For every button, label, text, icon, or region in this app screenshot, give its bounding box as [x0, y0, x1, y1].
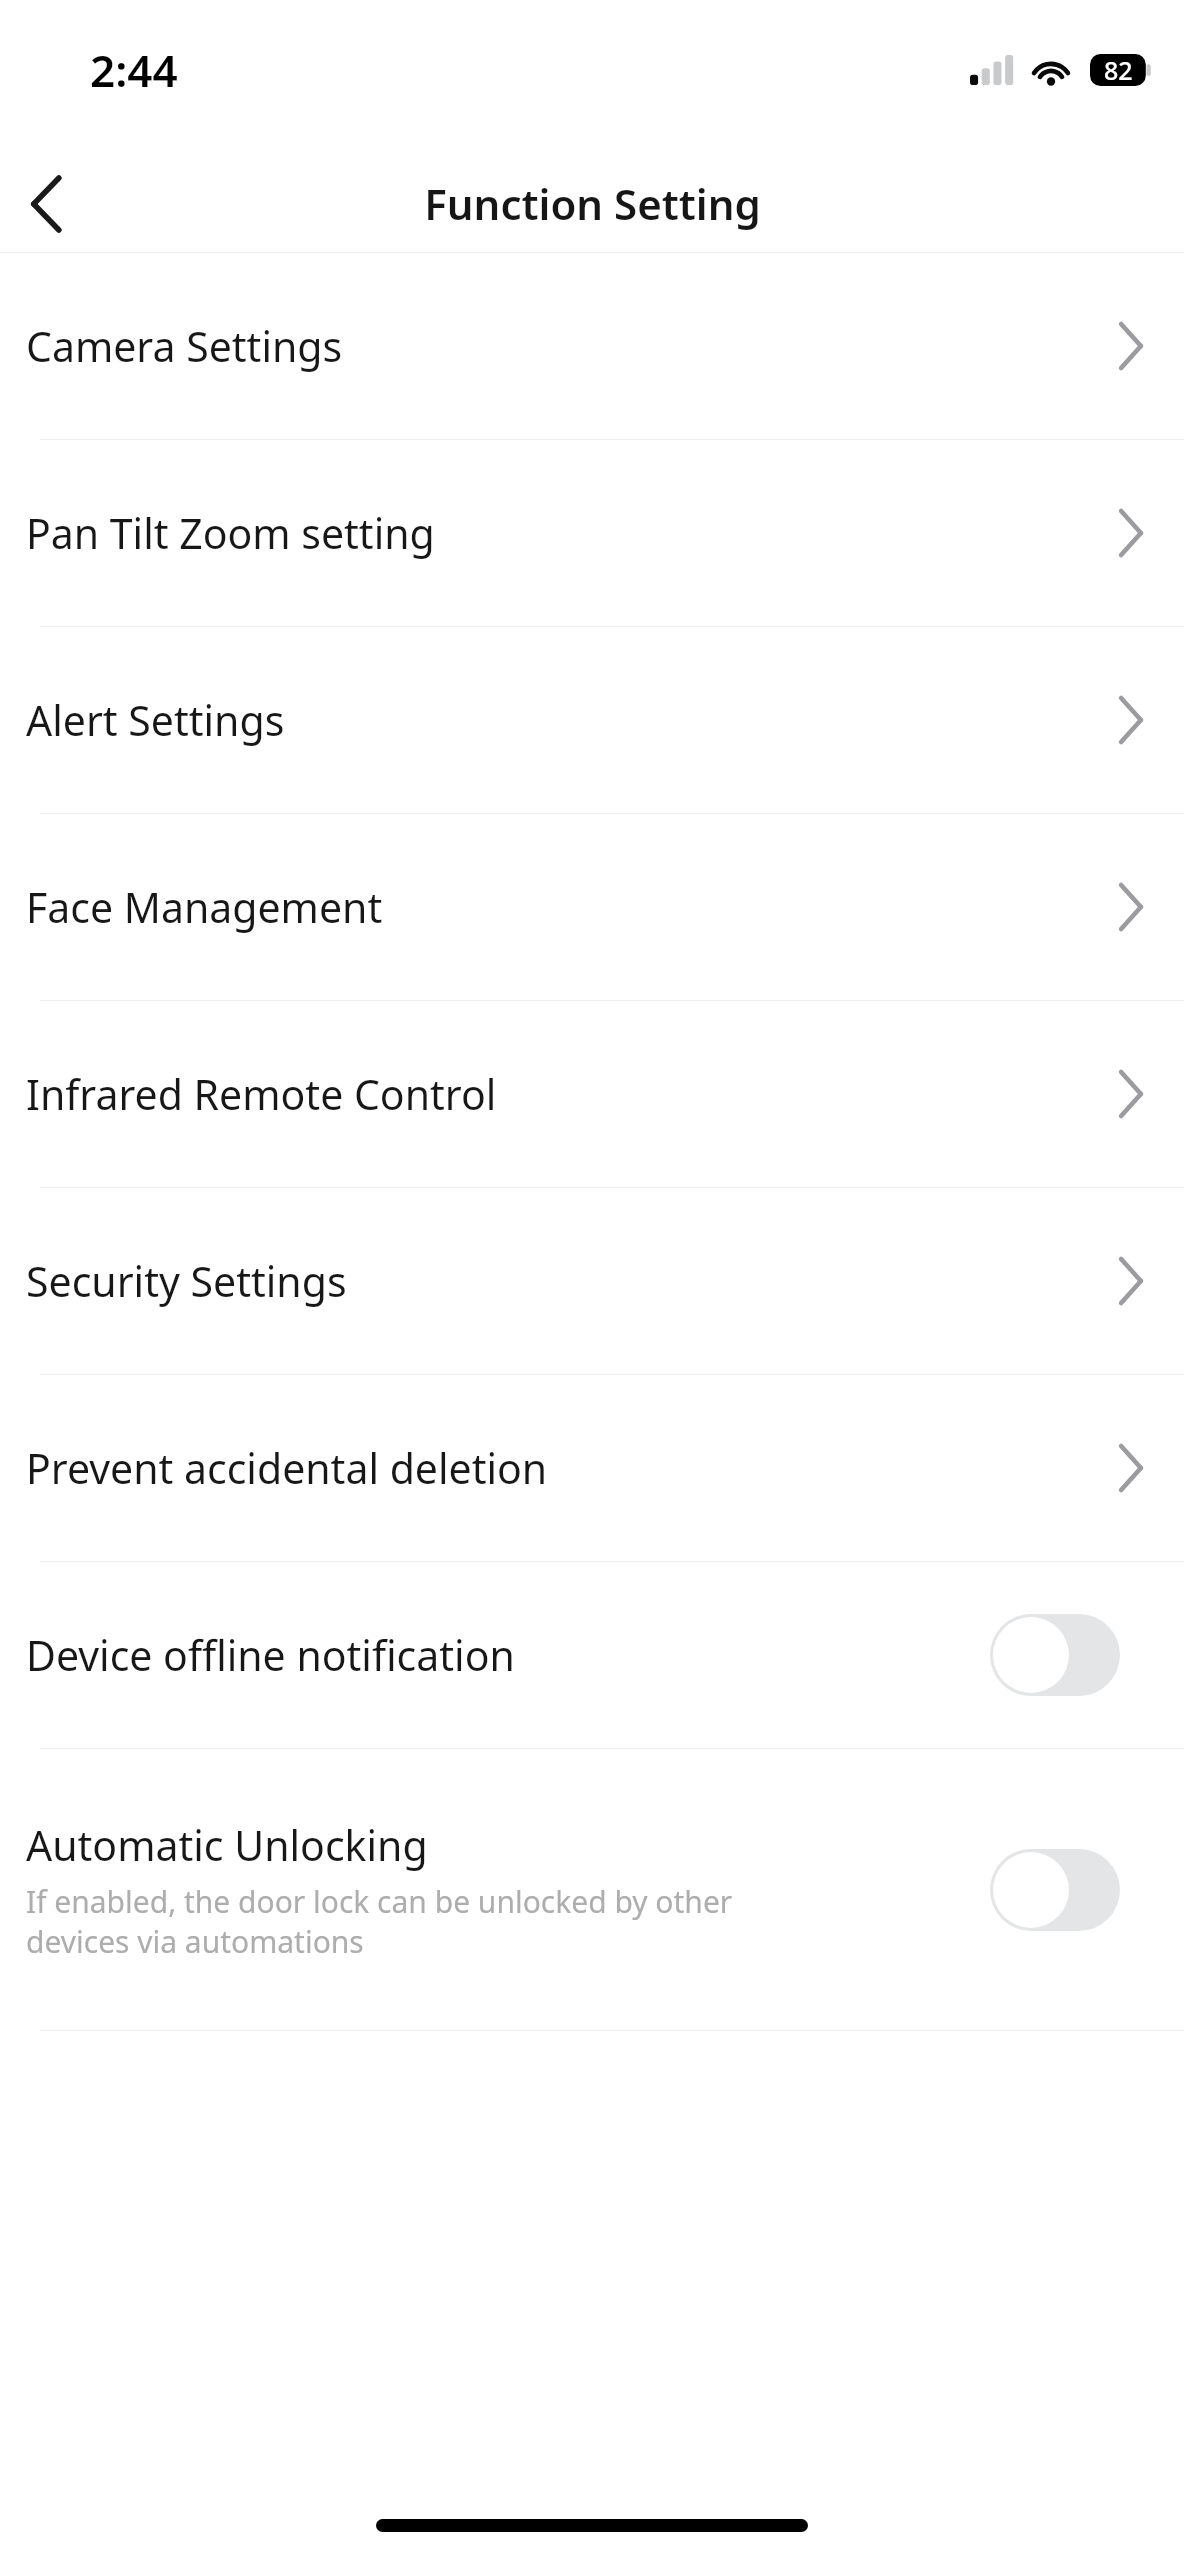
button[interactable]: Face Management — [0, 814, 1184, 1000]
staticText: 82 — [1104, 53, 1133, 87]
button[interactable]: Camera Settings — [0, 253, 1184, 439]
button[interactable]: Pan Tilt Zoom setting — [0, 440, 1184, 626]
staticText: Security Settings — [26, 1253, 1118, 1309]
button[interactable]: Toggle Automatic Unlocking — [990, 1849, 1120, 1931]
button[interactable]: Back — [0, 156, 96, 252]
button[interactable]: Device offline notification — [0, 1562, 1184, 1748]
staticText: Face Management — [26, 879, 1118, 935]
button[interactable]: Toggle Device offline notification — [990, 1614, 1120, 1696]
staticText: Camera Settings — [26, 318, 1118, 374]
button[interactable]: Automatic Unlocking — [0, 1749, 1184, 2030]
button[interactable]: Security Settings — [0, 1188, 1184, 1374]
staticText: Device offline notification — [26, 1627, 515, 1683]
staticText: Automatic Unlocking — [26, 1817, 428, 1873]
button[interactable]: Alert Settings — [0, 627, 1184, 813]
staticText: Infrared Remote Control — [26, 1066, 1118, 1122]
staticText: If enabled, the door lock can be unlocke… — [26, 1881, 733, 1962]
staticText: Alert Settings — [26, 692, 1118, 748]
button[interactable]: Infrared Remote Control — [0, 1001, 1184, 1187]
staticText: Function Setting — [424, 175, 761, 232]
button[interactable]: Prevent accidental deletion — [0, 1375, 1184, 1561]
staticText: 2:44 — [90, 40, 178, 100]
staticText: Pan Tilt Zoom setting — [26, 505, 1118, 561]
staticText: Prevent accidental deletion — [26, 1440, 1118, 1496]
